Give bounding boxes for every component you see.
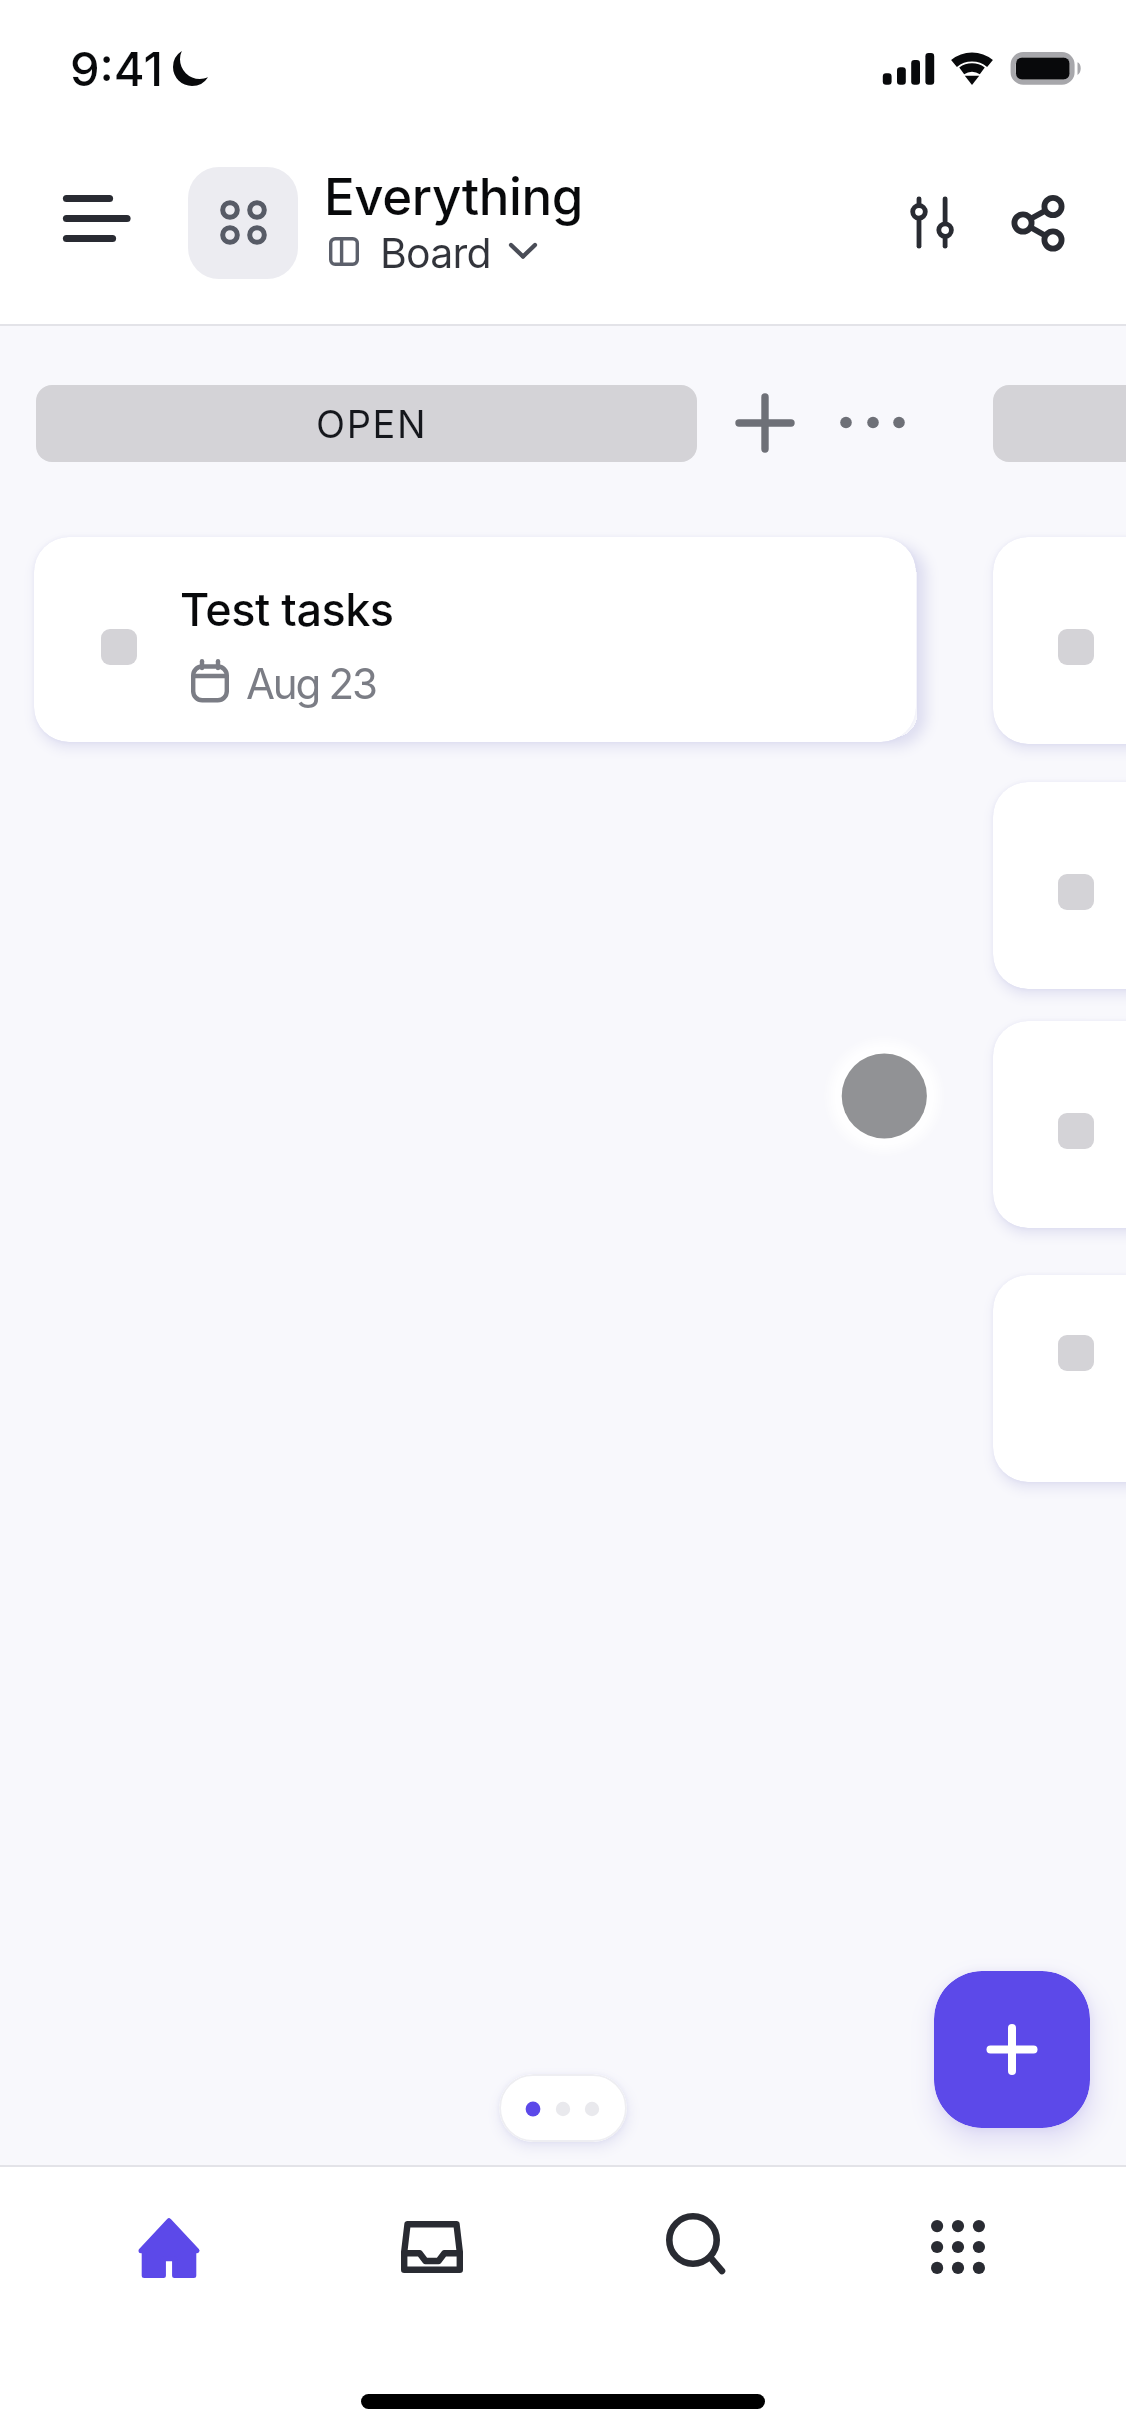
button[interactable]: Page indicator	[499, 2074, 627, 2142]
button[interactable]: Share	[1000, 180, 1086, 266]
button[interactable]: Inbox	[300, 2167, 563, 2327]
staticText: Board	[380, 228, 491, 278]
staticText: Everything	[324, 166, 583, 228]
button[interactable]: Task card	[993, 1021, 1126, 1228]
button[interactable]: Home	[37, 2167, 300, 2327]
button[interactable]: Space	[188, 167, 298, 279]
staticText: 9:41	[70, 40, 163, 97]
button[interactable]: Next status group	[993, 385, 1126, 462]
button[interactable]: Task card	[993, 782, 1126, 989]
button[interactable]: Task card	[993, 1275, 1126, 1482]
staticText: OPEN	[316, 401, 428, 447]
button[interactable]: Task card	[993, 537, 1126, 744]
button[interactable]: Test tasks	[34, 537, 916, 742]
button[interactable]: Search	[563, 2167, 826, 2327]
button[interactable]: Add task	[727, 385, 803, 461]
button[interactable]: More options	[820, 387, 892, 459]
staticText: Test tasks	[180, 582, 394, 636]
button[interactable]: Create	[934, 1971, 1090, 2128]
button[interactable]: OPEN	[36, 385, 697, 462]
button[interactable]: Menu	[45, 182, 145, 262]
button[interactable]: Apps	[826, 2167, 1089, 2327]
button[interactable]: Filter	[886, 175, 978, 271]
staticText: Aug 23	[246, 658, 376, 709]
